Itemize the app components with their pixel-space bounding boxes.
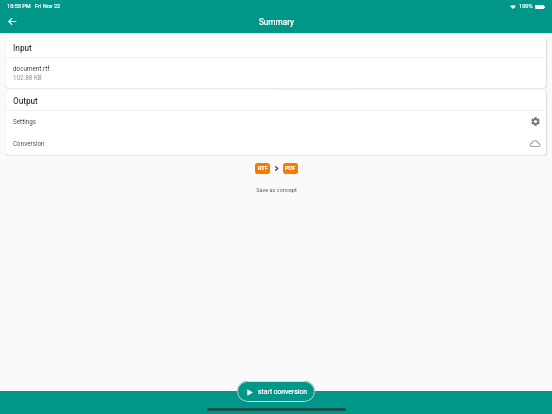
- staticText: Output: [13, 96, 38, 106]
- staticText: document.rtf: [13, 65, 50, 72]
- button[interactable]: start conversion: [237, 381, 315, 402]
- staticText: 100%: [519, 3, 533, 10]
- button[interactable]: Back: [3, 12, 21, 30]
- staticText: Summary: [259, 17, 294, 27]
- staticText: start conversion: [258, 388, 307, 396]
- button[interactable]: Settings: [528, 114, 542, 128]
- staticText: 102.88 KB: [13, 74, 42, 81]
- staticText: Save as concept: [256, 187, 297, 194]
- staticText: Conversion: [13, 140, 45, 147]
- staticText: PDF: [285, 165, 296, 172]
- staticText: Input: [13, 43, 32, 53]
- button[interactable]: document.rtf: [6, 58, 546, 88]
- button[interactable]: RTF: [255, 163, 270, 174]
- staticText: 10:53 PM: [7, 3, 31, 10]
- button[interactable]: Conversion: [6, 133, 546, 155]
- staticText: Fri Nov 22: [35, 3, 61, 10]
- button[interactable]: Conversion: [528, 136, 542, 150]
- button[interactable]: PDF: [283, 163, 298, 174]
- staticText: Settings: [13, 118, 36, 125]
- button[interactable]: Settings: [6, 111, 546, 133]
- staticText: RTF: [258, 165, 268, 172]
